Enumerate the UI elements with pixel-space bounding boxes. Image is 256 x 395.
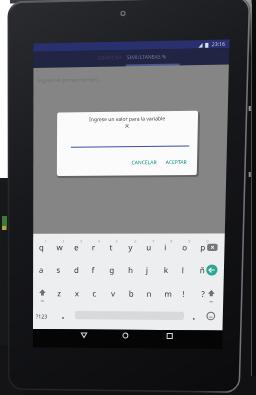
staticText: q bbox=[6, 197, 11, 208]
button[interactable]: SIMULTANEAS % bbox=[93, 12, 132, 19]
staticText: a bbox=[6, 220, 11, 231]
staticText: ?123 bbox=[3, 270, 15, 277]
staticText: 'A' bbox=[24, 79, 164, 86]
button[interactable] bbox=[0, 189, 193, 287]
staticText: Ingrese un valor para la variable bbox=[24, 72, 164, 79]
staticText: c bbox=[61, 244, 65, 255]
button[interactable]: ACEPTAR bbox=[133, 115, 154, 122]
button[interactable]: CANCELAR bbox=[99, 115, 133, 122]
staticText: x bbox=[43, 244, 48, 255]
staticText: Ingresá el primer número... bbox=[4, 33, 69, 40]
